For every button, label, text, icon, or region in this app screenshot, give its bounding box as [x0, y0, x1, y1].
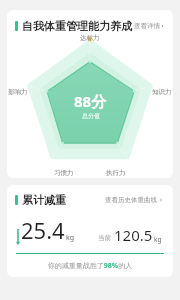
staticText: 25.4 [21, 215, 65, 245]
staticText: 累计减重 [22, 193, 66, 207]
staticText: 查看历史体重曲线 [105, 196, 157, 204]
staticText: 执行力 [106, 169, 126, 177]
staticText: kg [66, 233, 75, 243]
staticText: 习惯力 [54, 169, 74, 177]
staticText: 总分值 [82, 112, 100, 120]
staticText: 达标力 [80, 34, 100, 42]
staticText: 自我体重管理能力养成 [22, 19, 132, 33]
staticText: 当前 [98, 234, 111, 242]
staticText: 查看详情 [134, 22, 160, 30]
other: Weight decreased [16, 229, 20, 245]
button[interactable]: 查看详情 [132, 20, 165, 32]
staticText: 影响力 [8, 88, 28, 96]
staticText: 88分 [74, 91, 107, 111]
staticText: 120.5 [114, 225, 153, 245]
staticText: 你的减重量战胜了98%的人 [7, 261, 173, 271]
staticText: 知识力 [152, 88, 172, 96]
button[interactable]: 查看历史体重曲线 [103, 194, 165, 206]
staticText: kg [154, 235, 162, 244]
